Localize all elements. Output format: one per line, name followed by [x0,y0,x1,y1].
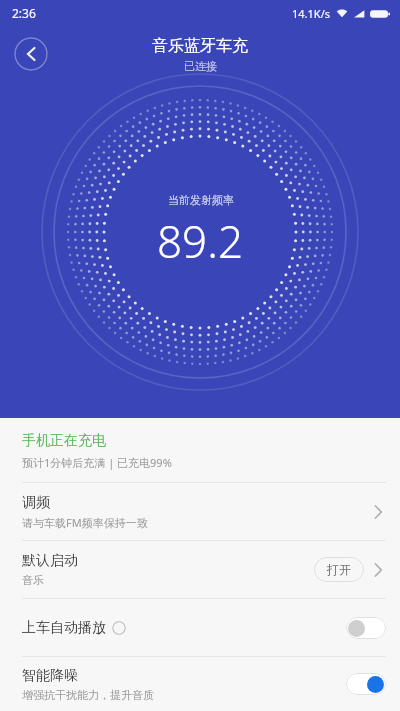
staticText: 上车自动播放 [22,619,106,637]
staticText: 音乐蓝牙车充 [152,36,248,56]
staticText: 音乐 [22,573,44,587]
button[interactable]: 手机正在充电 [0,418,400,482]
staticText: 请与车载FM频率保持一致 [22,515,148,530]
staticText: 预计1分钟后充满 | 已充电99% [22,455,172,470]
staticText: 默认启动 [22,552,78,570]
button[interactable] [346,617,386,639]
staticText: 2:36 [12,5,36,21]
staticText: 14.1K/s [292,6,330,21]
staticText: 89.2 [157,211,244,271]
button[interactable]: Back [14,37,48,71]
staticText: 已连接 [184,59,217,73]
button[interactable]: 打开 [314,557,364,582]
button[interactable] [346,673,386,695]
button[interactable]: 上车自动播放 [0,599,400,656]
staticText: 手机正在充电 [22,432,106,450]
staticText: 打开 [327,562,351,577]
button[interactable]: 调频 [0,483,400,540]
staticText: 调频 [22,494,50,512]
button[interactable]: 智能降噪 [0,657,400,711]
button[interactable]: 默认启动 [0,541,400,598]
staticText: 智能降噪 [22,667,78,685]
staticText: 当前发射频率 [168,193,234,207]
staticText: 增强抗干扰能力，提升音质 [22,688,154,702]
